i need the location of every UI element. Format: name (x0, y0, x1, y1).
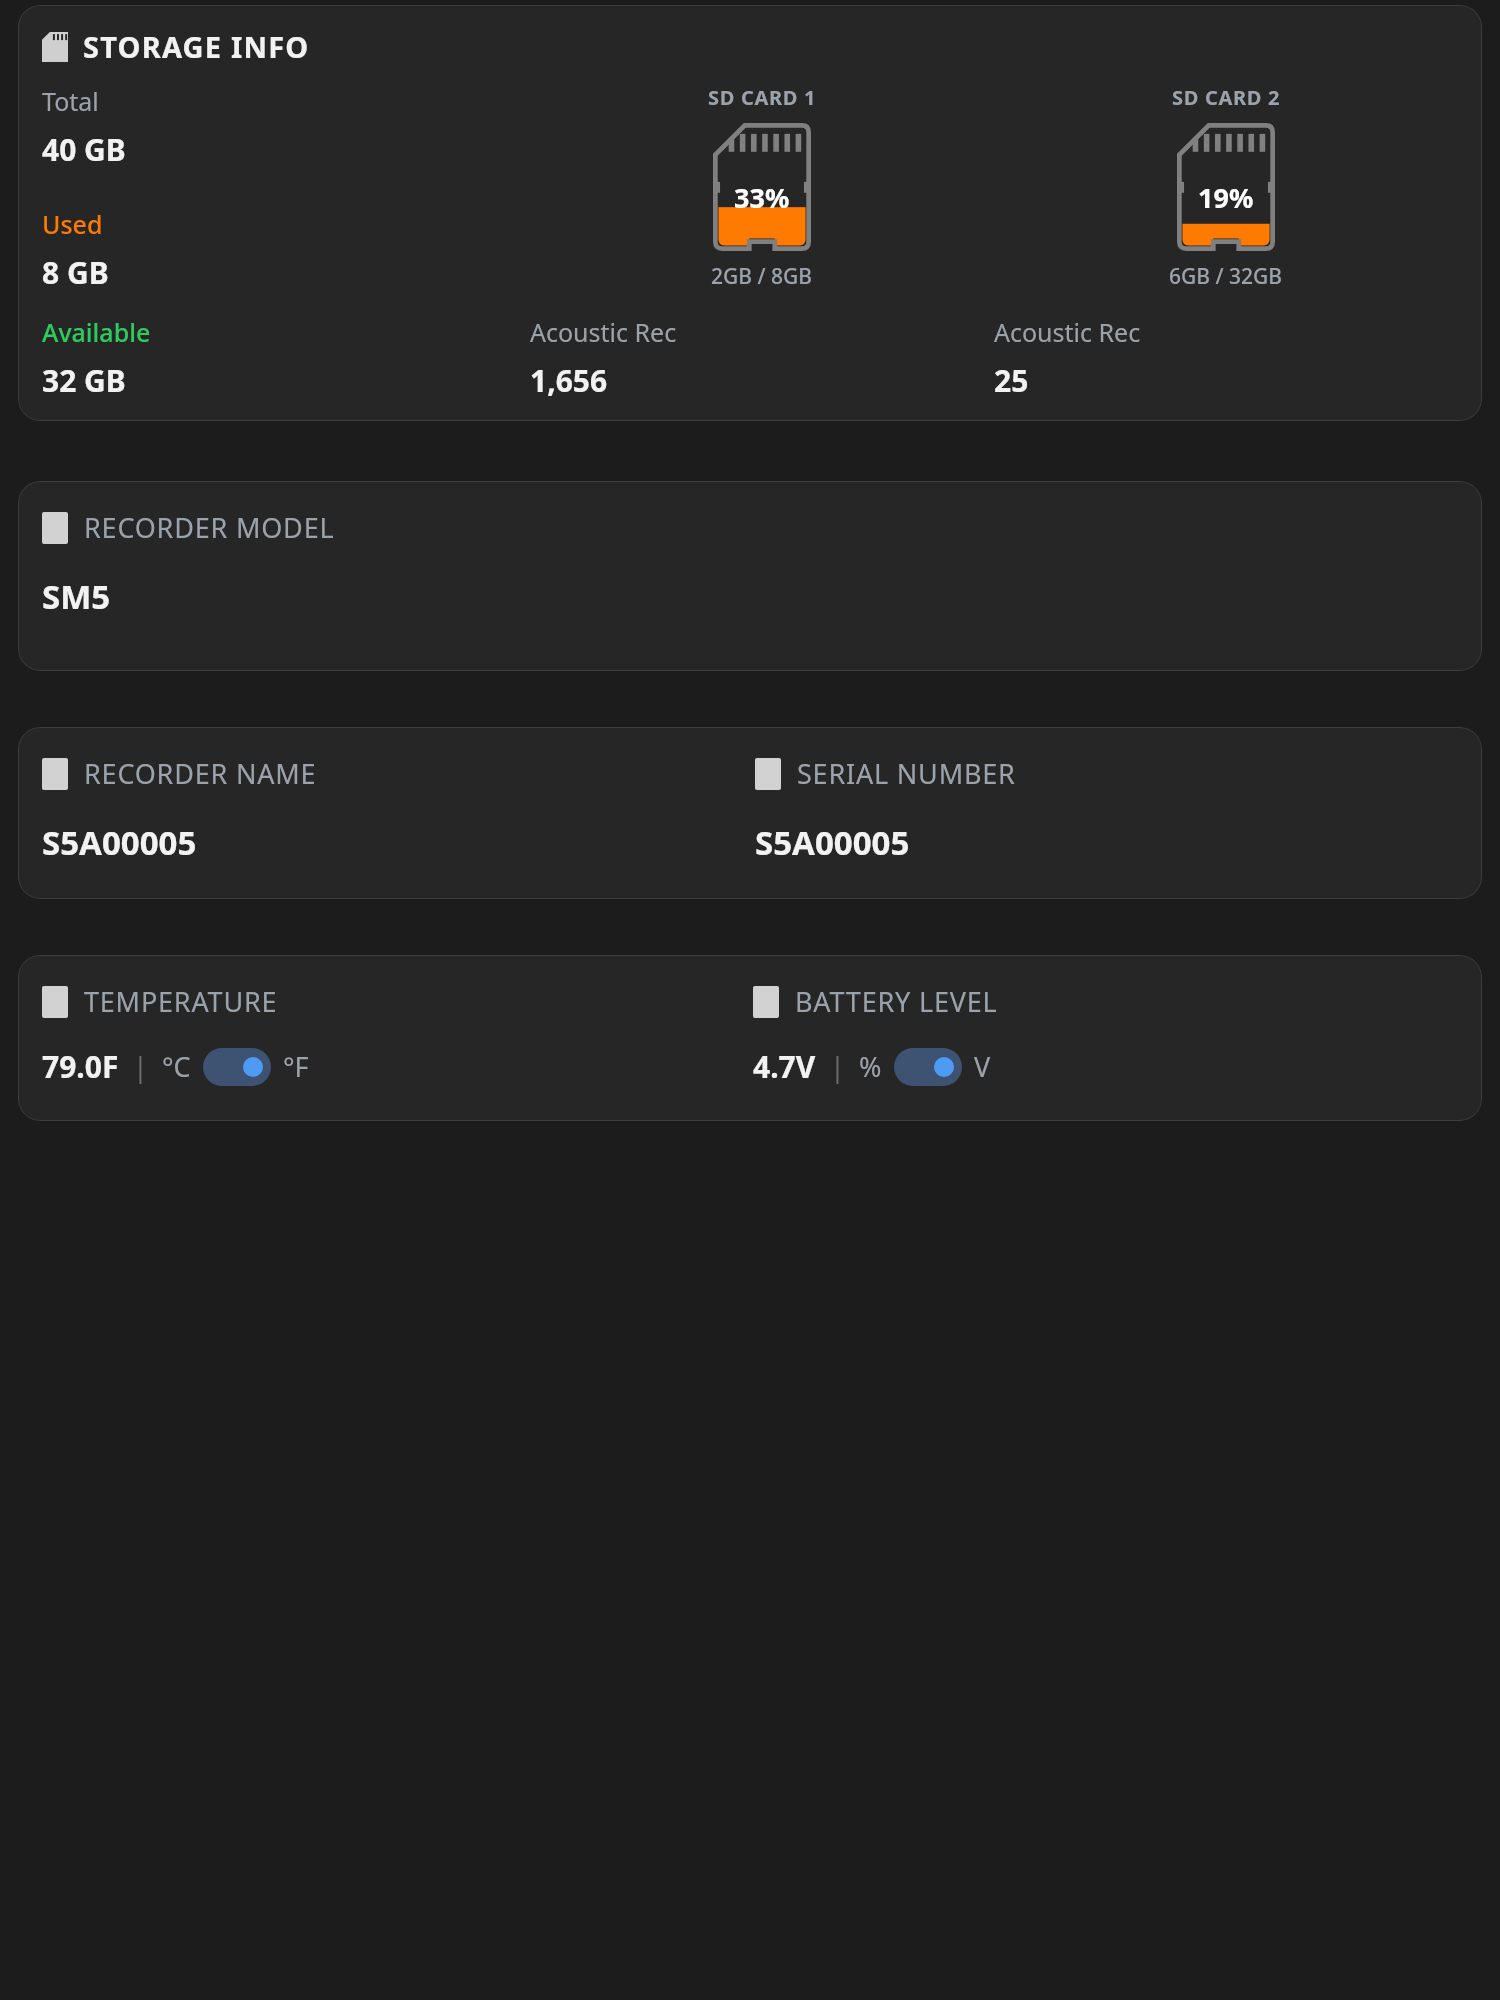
button[interactable]: Unit toggle (894, 1048, 962, 1086)
staticText: TEMPERATURE (84, 983, 278, 1020)
staticText: 33% (734, 179, 790, 216)
staticText: 8 GB (42, 252, 109, 293)
staticText: 25 (994, 360, 1029, 401)
button[interactable]: SERIAL NUMBER (755, 755, 1458, 865)
button[interactable]: Unit toggle (203, 1048, 271, 1086)
staticText: RECORDER NAME (84, 755, 317, 792)
staticText: | (133, 1048, 148, 1085)
staticText: °F (283, 1048, 309, 1085)
staticText: Acoustic Rec (994, 315, 1141, 349)
staticText: S5A00005 (755, 820, 910, 865)
staticText: 19% (1198, 179, 1254, 216)
staticText: Total (42, 84, 99, 118)
staticText: 6GB / 32GB (1169, 262, 1283, 291)
staticText: SD CARD 2 (1172, 84, 1281, 111)
staticText: Used (42, 207, 103, 241)
staticText: 40 GB (42, 129, 126, 170)
staticText: SD CARD 1 (708, 84, 817, 111)
button[interactable]: RECORDER MODEL (18, 481, 1482, 671)
staticText: Acoustic Rec (530, 315, 677, 349)
staticText: 4.7V (753, 1046, 816, 1087)
staticText: V (974, 1048, 991, 1085)
staticText: % (859, 1048, 882, 1085)
staticText: SM5 (42, 574, 111, 619)
staticText: Available (42, 315, 151, 349)
staticText: 2GB / 8GB (711, 262, 813, 291)
staticText: SERIAL NUMBER (797, 755, 1016, 792)
button[interactable]: STORAGE INFO (18, 5, 1482, 421)
button[interactable]: RECORDER NAME (42, 755, 745, 865)
staticText: BATTERY LEVEL (795, 983, 998, 1020)
staticText: 1,656 (530, 360, 608, 401)
staticText: S5A00005 (42, 820, 197, 865)
staticText: 32 GB (42, 360, 126, 401)
staticText: 79.0F (42, 1046, 119, 1087)
staticText: | (830, 1048, 845, 1085)
staticText: RECORDER MODEL (84, 509, 335, 546)
staticText: STORAGE INFO (83, 27, 310, 66)
staticText: °C (162, 1048, 191, 1085)
